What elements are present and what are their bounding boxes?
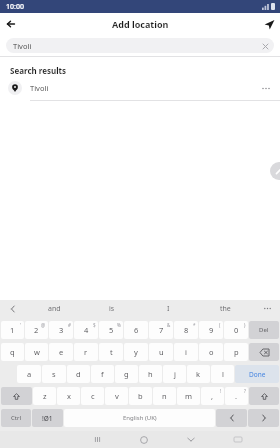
staticText: b: [138, 391, 143, 401]
button[interactable]: c: [81, 387, 104, 405]
staticText: @: [41, 322, 46, 328]
button[interactable]: h: [139, 365, 162, 383]
button[interactable]: 7: [149, 321, 173, 339]
button[interactable]: w: [25, 343, 48, 361]
staticText: Ctrl: [11, 414, 21, 422]
staticText: I: [167, 304, 170, 314]
button[interactable]: Tivoli: [6, 38, 274, 53]
button[interactable]: x: [57, 387, 80, 405]
staticText: 4: [84, 325, 89, 335]
button[interactable]: Recents: [74, 431, 120, 448]
button[interactable]: o: [199, 343, 223, 361]
staticText: ': [20, 322, 22, 328]
button[interactable]: and: [26, 300, 83, 317]
staticText: ): [244, 322, 246, 328]
button[interactable]: 0: [224, 321, 248, 339]
button[interactable]: Back: [0, 13, 22, 35]
button[interactable]: t: [99, 343, 123, 361]
staticText: $: [93, 322, 96, 328]
staticText: q: [10, 347, 15, 357]
button[interactable]: Backspace: [249, 343, 279, 361]
staticText: !: [220, 388, 222, 394]
staticText: 5: [109, 325, 114, 335]
button[interactable]: b: [129, 387, 152, 405]
button[interactable]: is: [83, 300, 140, 317]
button[interactable]: 1: [1, 321, 24, 339]
staticText: 10:00: [6, 2, 24, 12]
button[interactable]: Home: [120, 431, 167, 448]
button[interactable]: Ctrl: [1, 409, 31, 427]
button[interactable]: Current location: [258, 13, 280, 35]
button[interactable]: 4: [74, 321, 98, 339]
button[interactable]: s: [42, 365, 66, 383]
staticText: Tivoli: [30, 83, 258, 93]
button[interactable]: m: [177, 387, 200, 405]
staticText: d: [76, 369, 81, 379]
button[interactable]: 9: [199, 321, 223, 339]
staticText: r: [84, 347, 88, 357]
staticText: &: [167, 322, 171, 328]
button[interactable]: I: [140, 300, 197, 317]
button[interactable]: 6: [124, 321, 148, 339]
button[interactable]: .: [225, 387, 248, 405]
button[interactable]: Done: [235, 365, 279, 383]
button[interactable]: More suggestions: [254, 300, 280, 317]
button[interactable]: 3: [49, 321, 73, 339]
button[interactable]: Del: [249, 321, 279, 339]
button[interactable]: u: [149, 343, 173, 361]
staticText: English (UK): [123, 414, 157, 422]
button[interactable]: Tivoli: [0, 76, 280, 101]
button[interactable]: Move right: [248, 409, 279, 427]
button[interactable]: r: [74, 343, 98, 361]
button[interactable]: 5: [99, 321, 123, 339]
button[interactable]: Space: [64, 409, 215, 427]
staticText: (: [219, 322, 221, 328]
button[interactable]: y: [124, 343, 148, 361]
staticText: m: [185, 391, 193, 401]
button[interactable]: Shift right: [249, 387, 279, 405]
button[interactable]: i: [174, 343, 198, 361]
button[interactable]: z: [33, 387, 56, 405]
staticText: j: [174, 369, 176, 379]
button[interactable]: the: [197, 300, 254, 317]
button[interactable]: f: [91, 365, 114, 383]
staticText: and: [48, 304, 61, 314]
button[interactable]: j: [163, 365, 186, 383]
staticText: i: [185, 347, 187, 357]
button[interactable]: Switch keyboard: [214, 431, 261, 448]
staticText: p: [234, 347, 239, 357]
staticText: f: [101, 369, 104, 379]
button[interactable]: !Ø1: [32, 409, 63, 427]
staticText: 0: [234, 325, 239, 335]
button[interactable]: ,: [201, 387, 224, 405]
button[interactable]: g: [115, 365, 138, 383]
staticText: v: [115, 391, 119, 401]
staticText: x: [67, 391, 71, 401]
button[interactable]: e: [49, 343, 73, 361]
button[interactable]: Edit: [270, 162, 280, 180]
button[interactable]: q: [1, 343, 24, 361]
button[interactable]: 2: [25, 321, 48, 339]
staticText: u: [159, 347, 164, 357]
button[interactable]: a: [17, 365, 41, 383]
staticText: c: [91, 391, 95, 401]
staticText: Del: [259, 326, 269, 334]
staticText: Search results: [10, 65, 67, 76]
button[interactable]: More options: [258, 80, 274, 96]
button[interactable]: Hide keyboard: [167, 431, 214, 448]
button[interactable]: v: [105, 387, 128, 405]
button[interactable]: k: [187, 365, 210, 383]
button[interactable]: p: [224, 343, 248, 361]
staticText: g: [124, 369, 129, 379]
button[interactable]: 8: [174, 321, 198, 339]
button[interactable]: l: [211, 365, 234, 383]
button[interactable]: Previous: [0, 300, 26, 317]
button[interactable]: Move left: [216, 409, 247, 427]
staticText: Add location: [112, 18, 169, 30]
button[interactable]: Shift: [1, 387, 32, 405]
button[interactable]: Clear text: [260, 41, 270, 51]
staticText: Done: [249, 370, 266, 379]
staticText: 6: [134, 325, 139, 335]
button[interactable]: d: [67, 365, 90, 383]
button[interactable]: n: [153, 387, 176, 405]
